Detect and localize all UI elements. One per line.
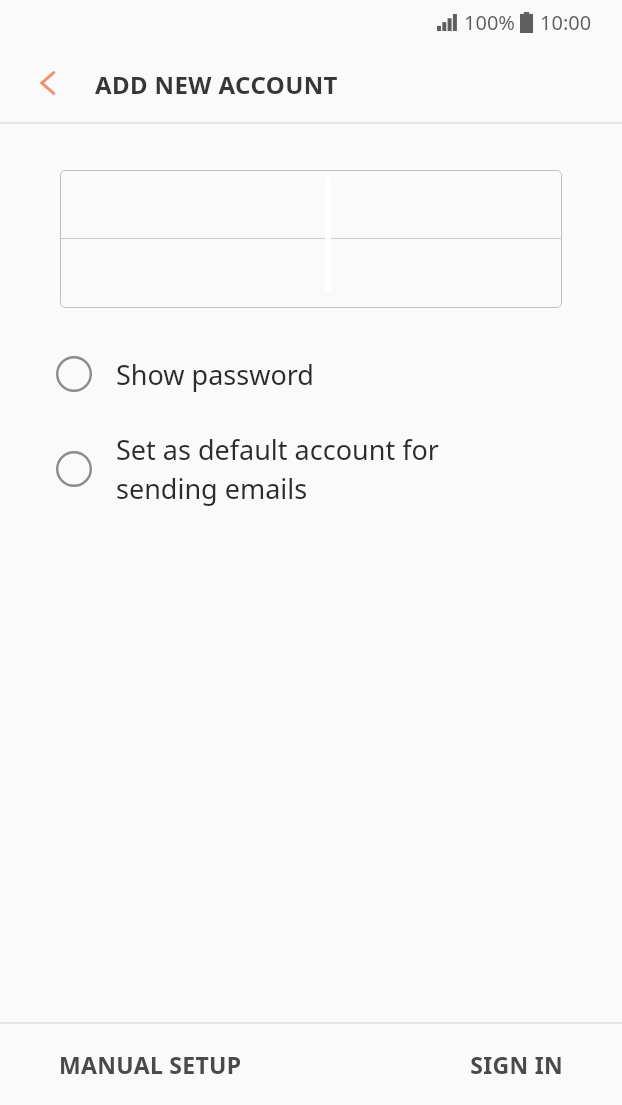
button[interactable]: MANUAL SETUP <box>0 1024 240 1105</box>
button[interactable]: Show password <box>0 338 622 410</box>
staticText: Show password <box>116 356 314 393</box>
staticText: SIGN IN <box>470 1049 563 1080</box>
button[interactable]: SIGN IN <box>422 1024 622 1105</box>
staticText: 10:00 <box>540 9 592 36</box>
staticText: Set as default account for sending email… <box>116 431 439 507</box>
staticText: ADD NEW ACCOUNT <box>95 68 338 101</box>
button[interactable]: Set as default account for sending email… <box>0 414 622 524</box>
staticText: MANUAL SETUP <box>59 1049 242 1080</box>
button[interactable]: Back <box>20 55 76 111</box>
staticText: 100% <box>464 9 515 36</box>
